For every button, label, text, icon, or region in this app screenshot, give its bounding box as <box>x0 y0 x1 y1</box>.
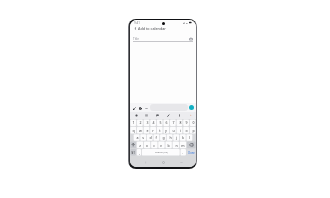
button[interactable]: k <box>180 134 186 141</box>
staticText: p <box>192 128 195 133</box>
button[interactable]: l <box>186 134 192 141</box>
button[interactable]: x <box>144 142 150 149</box>
staticText: n <box>175 143 178 148</box>
button[interactable]: t <box>157 127 163 134</box>
button[interactable]: Shortcut <box>174 112 185 119</box>
button[interactable]: r <box>150 127 156 134</box>
button[interactable]: 0 <box>190 119 196 126</box>
staticText: o <box>185 128 188 133</box>
button[interactable]: y <box>163 127 169 134</box>
button[interactable]: j <box>173 134 179 141</box>
button[interactable]: i <box>177 127 183 134</box>
button[interactable]: d <box>147 134 153 141</box>
staticText: 7 <box>172 120 175 125</box>
button[interactable]: Shortcut <box>131 112 141 119</box>
button[interactable]: . <box>180 149 185 156</box>
staticText: !#1 <box>131 151 135 154</box>
staticText: s <box>142 135 144 140</box>
button[interactable]: Expand toolbar <box>132 106 136 110</box>
staticText: v <box>160 143 162 148</box>
button[interactable]: p <box>190 127 196 134</box>
staticText: Title <box>133 37 139 41</box>
staticText: e <box>146 128 149 133</box>
staticText: , <box>139 150 140 155</box>
button[interactable]: Clipboard <box>138 106 142 110</box>
staticText: d <box>149 135 152 140</box>
button[interactable]: c <box>151 142 157 149</box>
button[interactable]: o <box>183 127 189 134</box>
staticText: f <box>155 135 157 140</box>
button[interactable]: English (UK) <box>142 149 180 156</box>
staticText: t <box>159 128 161 133</box>
button[interactable]: Voice input <box>189 105 194 110</box>
staticText: c <box>153 143 155 148</box>
staticText: b <box>167 143 170 148</box>
button[interactable]: 9 <box>183 119 189 126</box>
button[interactable]: !#1 <box>130 149 136 156</box>
staticText: m <box>181 143 185 148</box>
button[interactable]: f <box>153 134 159 141</box>
button[interactable]: 6 <box>163 119 169 126</box>
button[interactable]: u <box>170 127 176 134</box>
staticText: y <box>165 128 167 133</box>
button[interactable]: 8 <box>177 119 183 126</box>
button[interactable]: h <box>167 134 173 141</box>
button[interactable]: Shortcut <box>163 112 174 119</box>
staticText: 8 <box>179 120 182 125</box>
button[interactable]: Shift <box>130 142 136 149</box>
staticText: 6 <box>165 120 168 125</box>
button[interactable]: 4 <box>150 119 156 126</box>
staticText: 5 <box>159 120 162 125</box>
button[interactable]: Home <box>159 158 167 166</box>
staticText: 9 <box>185 120 188 125</box>
button[interactable]: 2 <box>137 119 143 126</box>
button[interactable]: 5 <box>157 119 163 126</box>
staticText: i <box>180 128 181 133</box>
button[interactable]: Done <box>187 149 196 156</box>
staticText: k <box>182 135 184 140</box>
staticText: l <box>189 135 190 140</box>
button[interactable]: Backspace <box>187 142 196 149</box>
button[interactable]: g <box>160 134 166 141</box>
button[interactable]: w <box>137 127 143 134</box>
staticText: 0 <box>192 120 195 125</box>
button[interactable]: a <box>134 134 140 141</box>
staticText: z <box>139 143 141 148</box>
button[interactable]: Shortcut <box>185 112 196 119</box>
staticText: h <box>169 135 172 140</box>
staticText: 2 <box>139 120 142 125</box>
button[interactable]: Recent apps <box>177 158 185 166</box>
button[interactable]: Shortcut <box>152 112 163 119</box>
button[interactable]: 3 <box>144 119 150 126</box>
button[interactable]: z <box>137 142 143 149</box>
staticText: Done <box>188 151 195 154</box>
staticText: g <box>162 135 165 140</box>
button[interactable]: More options <box>144 106 148 110</box>
staticText: x <box>146 143 148 148</box>
button[interactable]: , <box>137 149 141 156</box>
staticText: 3 <box>146 120 149 125</box>
staticText: 1 <box>132 120 135 125</box>
button[interactable]: 1 <box>130 119 136 126</box>
button[interactable]: s <box>140 134 146 141</box>
staticText: q <box>132 128 135 133</box>
button[interactable]: Navigate up <box>133 26 138 31</box>
staticText: j <box>176 135 177 140</box>
staticText: r <box>152 128 154 133</box>
staticText: Add to calendar <box>138 26 166 31</box>
button[interactable]: q <box>130 127 136 134</box>
staticText: u <box>172 128 175 133</box>
staticText: a <box>136 135 139 140</box>
staticText: 4 <box>152 120 155 125</box>
staticText: w <box>139 128 142 133</box>
button[interactable]: e <box>144 127 150 134</box>
button[interactable]: Take photo <box>188 36 193 41</box>
button[interactable]: b <box>165 142 171 149</box>
button[interactable]: m <box>180 142 186 149</box>
button[interactable]: Shortcut <box>141 112 152 119</box>
button[interactable]: n <box>173 142 179 149</box>
button[interactable]: v <box>158 142 164 149</box>
button[interactable]: 7 <box>170 119 176 126</box>
